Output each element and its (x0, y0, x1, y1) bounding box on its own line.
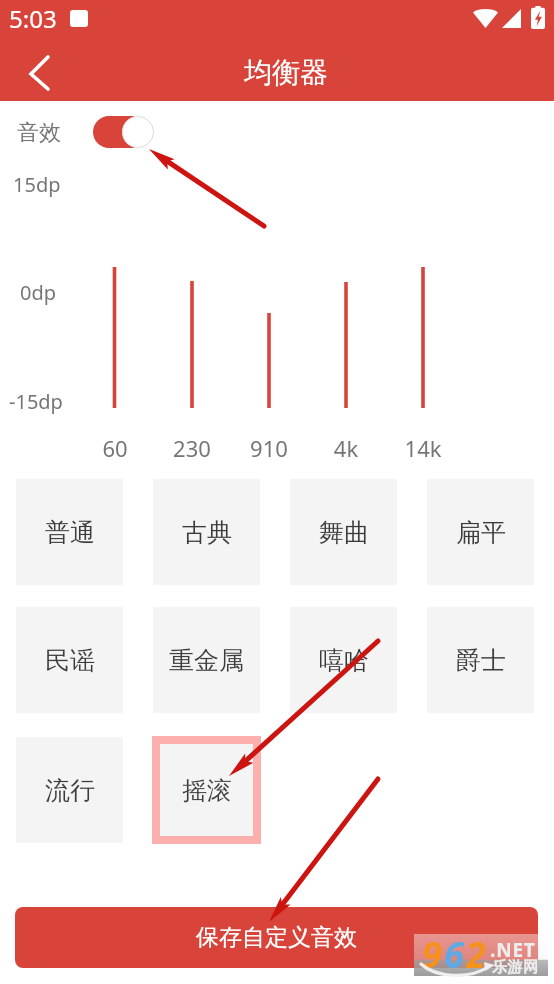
staticText: 扁平 (456, 517, 506, 548)
staticText: 9 (422, 930, 442, 972)
staticText: 230 (152, 433, 232, 463)
button[interactable]: 流行 (16, 737, 123, 843)
staticText: 0dp (20, 279, 57, 306)
staticText: 15dp (13, 171, 61, 198)
staticText: 5:03 (9, 2, 57, 35)
staticText: 均衡器 (244, 55, 328, 90)
button[interactable]: Sound effect toggle (93, 116, 154, 148)
button[interactable]: 古典 (153, 479, 260, 585)
button[interactable]: 民谣 (16, 607, 123, 713)
button[interactable]: 嘻哈 (290, 607, 397, 713)
staticText: 摇滚 (182, 775, 232, 806)
staticText: 910 (229, 433, 309, 463)
staticText: 音效 (17, 119, 61, 147)
button[interactable]: 重金属 (153, 607, 260, 713)
button[interactable]: 爵士 (427, 607, 534, 713)
button[interactable]: 舞曲 (290, 479, 397, 585)
staticText: 古典 (182, 517, 232, 548)
staticText: 保存自定义音效 (196, 923, 357, 952)
button[interactable]: Back (6, 45, 62, 101)
staticText: 嘻哈 (319, 645, 369, 676)
staticText: 14k (383, 433, 463, 463)
button[interactable]: 保存自定义音效 (15, 907, 538, 968)
staticText: 爵士 (456, 645, 506, 676)
staticText: 乐游网 (492, 958, 539, 977)
staticText: 4k (306, 433, 386, 463)
staticText: 重金属 (169, 645, 244, 676)
button[interactable]: 摇滚 (160, 744, 253, 836)
staticText: .NET (490, 937, 536, 963)
staticText: 流行 (45, 775, 95, 806)
staticText: 6 (444, 930, 464, 972)
button[interactable]: 扁平 (427, 479, 534, 585)
staticText: 民谣 (45, 645, 95, 676)
button[interactable]: 普通 (16, 479, 123, 585)
staticText: 舞曲 (319, 517, 369, 548)
staticText: 普通 (45, 517, 95, 548)
staticText: -15dp (9, 388, 63, 415)
staticText: 2 (466, 930, 486, 972)
staticText: 60 (75, 433, 155, 463)
